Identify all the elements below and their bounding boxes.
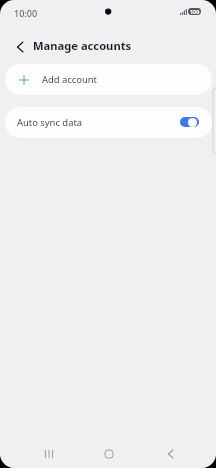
staticText: Add account [42,73,97,86]
button[interactable]: Home [91,436,127,468]
button[interactable]: Back [152,436,188,468]
staticText: Auto sync data [17,116,83,129]
button[interactable]: Recent apps [31,436,67,468]
staticText: 100 [190,8,200,15]
button[interactable]: Auto sync data [5,107,212,138]
staticText: Manage accounts [33,38,132,53]
button[interactable]: Navigate up [7,34,33,60]
staticText: 10:00 [14,7,38,19]
button[interactable]: Add account [5,64,212,95]
